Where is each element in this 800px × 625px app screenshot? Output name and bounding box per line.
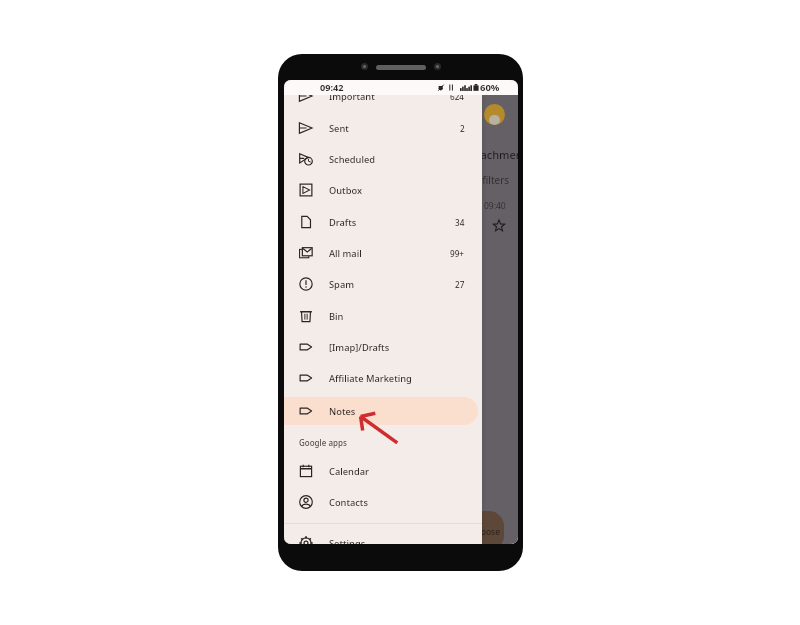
button[interactable]: [Imap]/Drafts (284, 333, 478, 361)
button[interactable]: Settings (284, 529, 478, 544)
button[interactable]: Important (284, 95, 478, 110)
staticText: 624 (450, 95, 465, 102)
staticText: Contacts (329, 496, 368, 509)
button[interactable]: Drafts (284, 208, 478, 236)
button[interactable]: Bin (284, 302, 478, 330)
staticText: Outbox (329, 184, 362, 197)
staticText: Use filters (462, 173, 510, 187)
staticText: 99+ (450, 248, 465, 259)
button[interactable]: Affiliate Marketing (284, 364, 478, 392)
staticText: All mail (329, 247, 362, 260)
staticText: 34 (455, 217, 465, 228)
staticText: Drafts (329, 216, 357, 229)
button[interactable]: Outbox (284, 176, 478, 204)
staticText: Spam (329, 278, 354, 291)
button[interactable]: Notes (284, 397, 478, 425)
staticText: with attachments (440, 147, 518, 162)
staticText: Settings (329, 537, 366, 544)
button[interactable]: Scheduled (284, 145, 478, 173)
staticText: Compose (462, 526, 501, 538)
staticText: Scheduled (329, 153, 376, 166)
staticText: Affiliate Marketing (329, 372, 412, 385)
staticText: Bin (329, 310, 344, 323)
staticText: [Imap]/Drafts (329, 341, 390, 354)
staticText: 60% (480, 81, 500, 94)
staticText: Important (329, 95, 375, 103)
staticText: 09:40 (484, 200, 506, 212)
button[interactable]: Spam (284, 270, 478, 298)
staticText: 09:42 (320, 81, 344, 94)
staticText: Notes (329, 405, 356, 418)
staticText: Calendar (329, 465, 369, 478)
staticText: 2 (460, 123, 465, 134)
button[interactable]: All mail (284, 239, 478, 267)
button[interactable]: Calendar (284, 457, 478, 485)
staticText: 27 (455, 279, 465, 290)
staticText: Google apps (299, 437, 347, 448)
button[interactable]: Sent (284, 114, 478, 142)
staticText: Sent (329, 122, 349, 135)
button[interactable]: Contacts (284, 488, 478, 516)
